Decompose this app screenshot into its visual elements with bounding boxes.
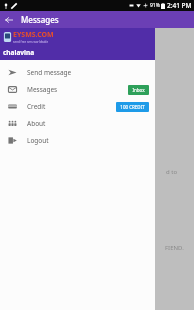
- staticText: Messages: [27, 85, 58, 94]
- staticText: 100 CREDIT: [120, 104, 145, 110]
- staticText: d to: [166, 168, 178, 176]
- staticText: FIEND.: [165, 244, 184, 252]
- staticText: 91%: [150, 2, 160, 9]
- staticText: send free sms worldwide: [13, 40, 49, 44]
- staticText: chalavina: [3, 48, 35, 57]
- button[interactable]: Back: [0, 11, 17, 28]
- staticText: Inbox: [132, 87, 145, 93]
- button[interactable]: About: [0, 115, 155, 132]
- button[interactable]: Credit: [0, 98, 155, 115]
- staticText: Messages: [21, 14, 59, 25]
- staticText: 2:41 PM: [167, 1, 192, 10]
- staticText: Logout: [27, 136, 49, 145]
- button[interactable]: Logout: [0, 132, 155, 149]
- button[interactable]: Send message: [0, 64, 155, 81]
- staticText: Credit: [27, 102, 46, 111]
- staticText: About: [27, 119, 46, 128]
- staticText: Send message: [27, 68, 72, 77]
- button[interactable]: Messages: [0, 81, 155, 98]
- staticText: EYSMS.COM: [13, 30, 54, 40]
